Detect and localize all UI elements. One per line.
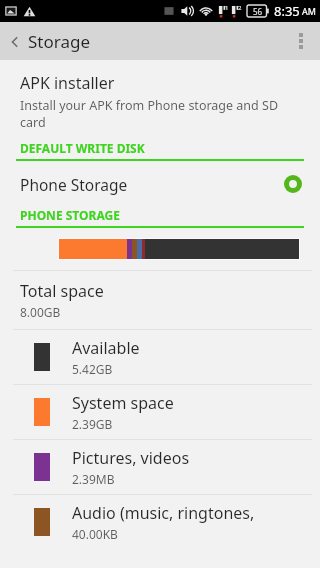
staticText: APK installer	[20, 72, 115, 94]
staticText: 2	[238, 4, 242, 12]
staticText: PHONE STORAGE	[20, 207, 120, 223]
button[interactable]: Audio (music, ringtones, podcasts)	[0, 495, 320, 549]
button[interactable]: Storage	[0, 30, 280, 53]
button[interactable]: Phone Storage	[0, 161, 320, 207]
button[interactable]: More options	[282, 22, 320, 60]
staticText: 56	[253, 6, 263, 17]
staticText: Available	[72, 337, 140, 359]
button[interactable]: Available	[0, 330, 320, 384]
staticText: 2.39GB	[72, 416, 113, 432]
staticText: System space	[72, 392, 174, 414]
staticText: Install your APK from Phone storage and …	[20, 97, 302, 130]
staticText: 2.39MB	[72, 471, 115, 487]
button[interactable]: APK installer	[0, 60, 320, 140]
staticText: 5.42GB	[72, 361, 113, 377]
button[interactable]: System space	[0, 385, 320, 439]
staticText: Phone Storage	[20, 174, 128, 195]
staticText: 1	[225, 4, 229, 12]
staticText: 8.00GB	[20, 304, 61, 320]
staticText: 8:35	[274, 2, 300, 20]
button[interactable]: Pictures, videos	[0, 440, 320, 494]
staticText: Audio (music, ringtones, podcasts)	[72, 502, 312, 524]
staticText: Pictures, videos	[72, 447, 190, 469]
staticText: DEFAULT WRITE DISK	[20, 140, 145, 156]
staticText: Storage	[28, 30, 91, 53]
staticText: Total space	[20, 280, 104, 302]
staticText: AM	[302, 5, 316, 17]
button[interactable]: Total space	[0, 271, 320, 329]
staticText: 40.00KB	[72, 526, 118, 542]
